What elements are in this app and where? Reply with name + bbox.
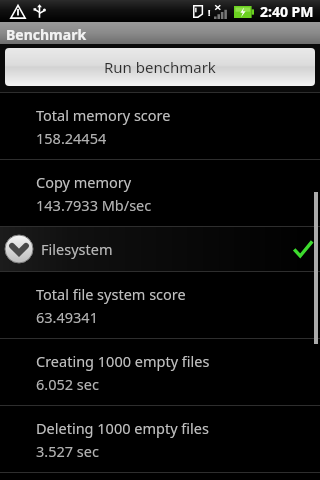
staticText: Total memory score (36, 105, 171, 125)
staticText: 143.7933 Mb/sec (36, 195, 152, 215)
button[interactable]: Creating 1000 empty files (0, 339, 320, 405)
staticText: 158.24454 (36, 128, 107, 148)
staticText: Copy memory (36, 172, 132, 192)
staticText: Filesystem (41, 239, 113, 259)
staticText: Run benchmark (104, 57, 216, 77)
button[interactable]: Deleting 1000 empty files (0, 406, 320, 472)
staticText: Creating 1000 empty files (36, 351, 210, 371)
button[interactable]: Copy memory (0, 160, 320, 226)
button[interactable]: Total file system score (0, 272, 320, 338)
button[interactable]: Run benchmark (5, 48, 315, 86)
staticText: 6.052 sec (36, 374, 99, 394)
staticText: 2:40 PM (260, 2, 314, 21)
staticText: Deleting 1000 empty files (36, 418, 209, 438)
staticText: 3.527 sec (36, 441, 99, 461)
other: Collapse Filesystem (5, 235, 33, 263)
staticText: Total file system score (36, 284, 186, 304)
staticText: Benchmark (6, 25, 87, 44)
button[interactable]: Collapse Filesystem (0, 227, 320, 271)
staticText: 63.49341 (36, 307, 98, 327)
button[interactable]: Total memory score (0, 93, 320, 159)
staticText: ! (208, 6, 211, 18)
